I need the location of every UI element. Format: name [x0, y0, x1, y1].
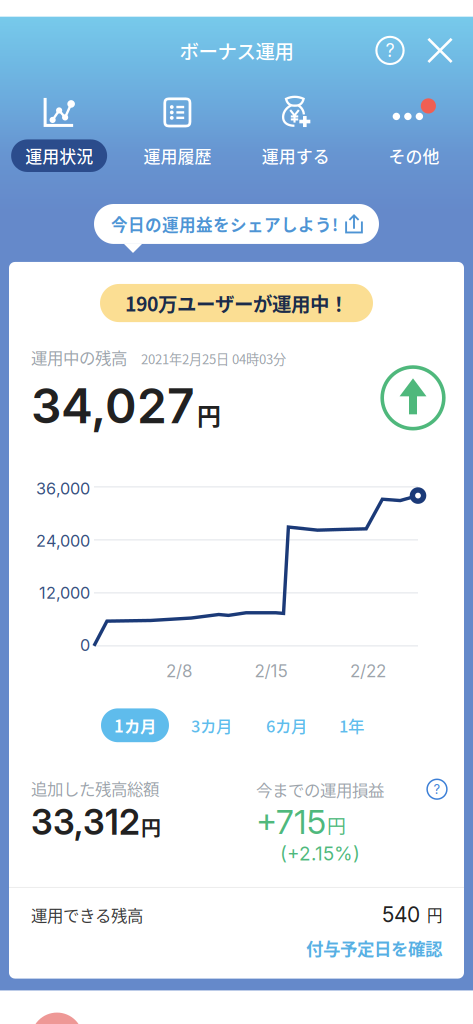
staticText: 2/22 — [350, 661, 386, 681]
staticText: その他 — [388, 143, 439, 168]
button[interactable]: Close — [409, 31, 459, 69]
staticText: 運用できる残高 — [31, 903, 143, 926]
staticText: 運用する — [262, 143, 330, 168]
staticText: 円 — [197, 397, 221, 432]
staticText: 190万ユーザーが運用中！ — [125, 289, 348, 317]
button[interactable]: 付与予定日を確認 — [9, 927, 464, 979]
staticText: +715 — [256, 802, 326, 842]
staticText: 2021年2月25日 04時03分 — [141, 349, 286, 368]
staticText: ボーナス運用 — [179, 36, 293, 65]
staticText: 2/8 — [166, 661, 192, 681]
button[interactable]: 1カ月 — [101, 708, 169, 742]
staticText: 運用履歴 — [143, 143, 211, 168]
button[interactable]: 今日の運用益をシェアしよう! — [94, 204, 379, 244]
staticText: 1年 — [339, 713, 364, 737]
staticText: 540 — [382, 902, 420, 927]
staticText: 運用状況 — [25, 143, 93, 168]
staticText: ? — [433, 781, 440, 797]
button[interactable]: 1年 — [339, 708, 364, 742]
staticText: 今までの運用損益 — [256, 777, 384, 801]
button[interactable]: 3カ月 — [191, 708, 232, 742]
button[interactable]: その他 — [355, 96, 473, 172]
staticText: (+2.15%) — [280, 842, 360, 865]
staticText: 34,027 — [31, 377, 195, 435]
staticText: 今日の運用益をシェアしよう! — [111, 212, 338, 236]
staticText: 1カ月 — [114, 713, 156, 737]
staticText: ? — [385, 40, 394, 61]
staticText: 6カ月 — [266, 713, 307, 737]
staticText: 0 — [80, 635, 90, 655]
button[interactable]: 運用履歴 — [118, 96, 236, 172]
staticText: 36,000 — [36, 479, 90, 499]
staticText: 24,000 — [36, 531, 90, 551]
staticText: 円 — [427, 903, 442, 926]
staticText: 円 — [141, 812, 161, 841]
staticText: 円 — [327, 812, 346, 839]
button[interactable]: 運用状況 — [0, 96, 118, 172]
button[interactable]: Help about profit — [424, 776, 450, 802]
button[interactable]: Help — [371, 31, 409, 69]
staticText: 33,312 — [31, 801, 140, 843]
button[interactable]: 6カ月 — [266, 708, 307, 742]
staticText: 12,000 — [39, 583, 90, 603]
staticText: 2/15 — [254, 661, 287, 681]
staticText: 3カ月 — [191, 713, 232, 737]
button[interactable]: 運用する — [236, 96, 355, 172]
staticText: 運用中の残高 — [31, 345, 127, 369]
staticText: 付与予定日を確認 — [306, 935, 442, 961]
staticText: 追加した残高総額 — [31, 776, 159, 800]
